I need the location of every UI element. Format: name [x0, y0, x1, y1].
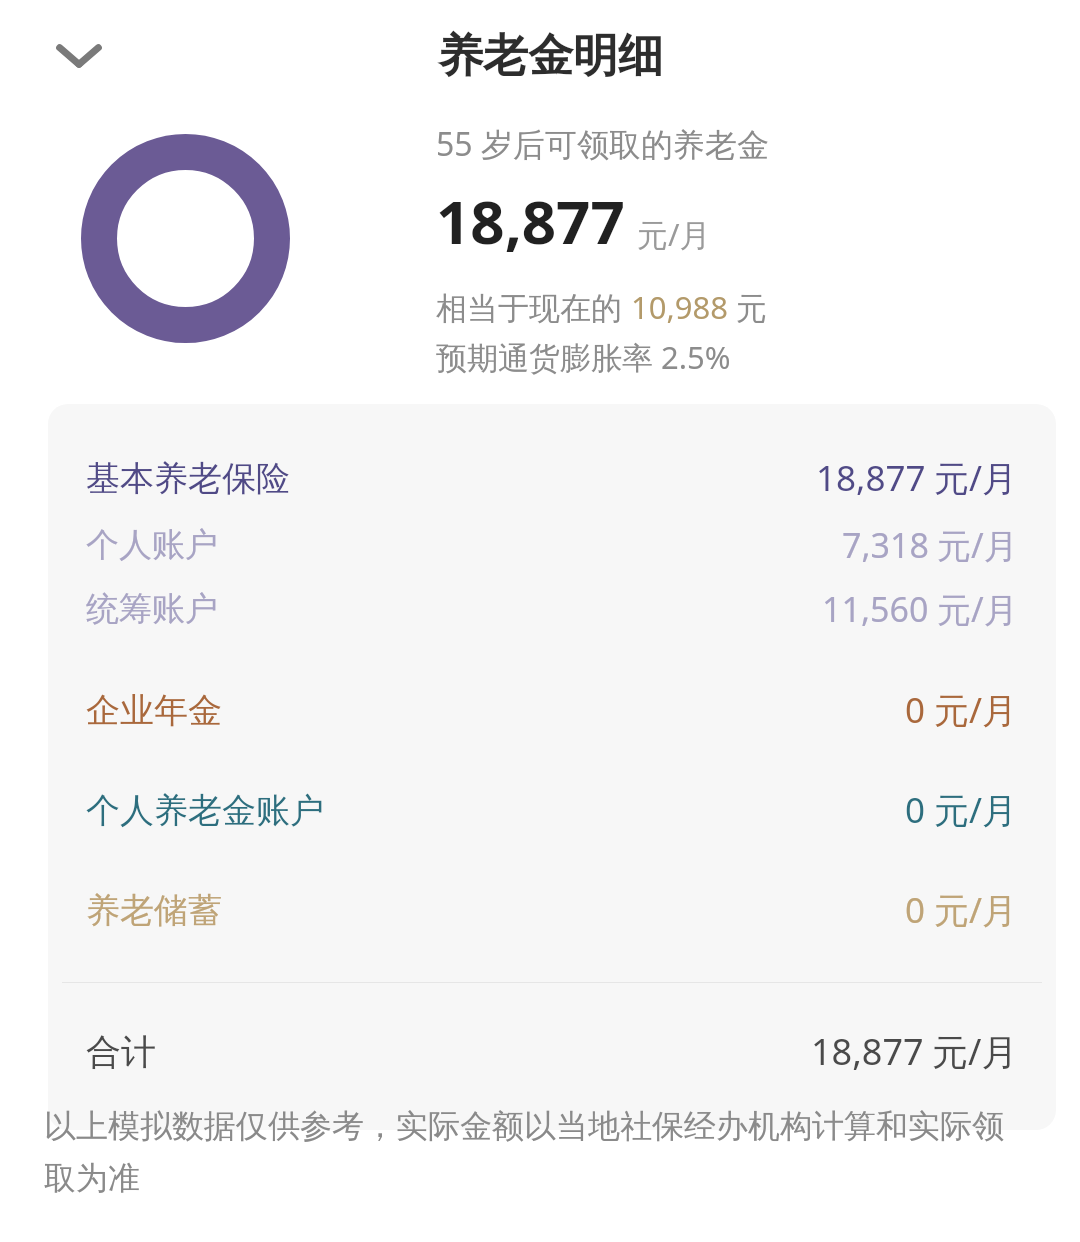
button[interactable]: 基本养老保险	[48, 450, 1056, 506]
staticText: 企业年金	[86, 689, 222, 732]
button[interactable]: 个人账户	[48, 518, 1056, 572]
staticText: 合计	[86, 1030, 156, 1074]
staticText: 元	[728, 286, 768, 328]
staticText: 11,560	[822, 586, 929, 632]
staticText: 元/月	[637, 213, 711, 255]
staticText: 0	[905, 786, 926, 834]
staticText: 元/月	[934, 786, 1018, 834]
staticText: 元/月	[934, 454, 1018, 502]
staticText: 0	[905, 886, 926, 934]
staticText: 个人账户	[86, 524, 218, 566]
staticText: 元/月	[937, 586, 1018, 632]
staticText: 0	[905, 686, 926, 734]
staticText: 相当于现在的	[436, 286, 631, 328]
button[interactable]: 合计	[48, 1023, 1056, 1080]
staticText: 养老储蓄	[86, 889, 222, 932]
staticText: 统筹账户	[86, 588, 218, 630]
staticText: 元/月	[932, 1027, 1018, 1076]
button[interactable]: 统筹账户	[48, 582, 1056, 636]
staticText: 以上模拟数据仅供参考，实际金额以当地社保经办机构计算和实际领取为准	[44, 1106, 1024, 1198]
button[interactable]: 养老储蓄	[48, 882, 1056, 938]
staticText: 基本养老保险	[86, 457, 290, 500]
staticText: 个人养老金账户	[86, 789, 324, 832]
staticText: 预期通货膨胀率 2.5%	[436, 336, 731, 378]
button[interactable]: 个人养老金账户	[48, 782, 1056, 838]
staticText: 元/月	[937, 522, 1018, 568]
staticText: 元/月	[934, 686, 1018, 734]
staticText: 元/月	[934, 886, 1018, 934]
staticText: 养老金明细	[438, 28, 663, 85]
staticText: 55 岁后可领取的养老金	[436, 122, 769, 166]
staticText: 18,877	[436, 180, 625, 262]
button[interactable]: 企业年金	[48, 682, 1056, 738]
button[interactable]: Collapse	[40, 20, 118, 92]
staticText: 18,877	[811, 1027, 924, 1076]
staticText: 18,877	[816, 454, 926, 502]
staticText: 7,318	[842, 522, 929, 568]
staticText: 10,988	[631, 286, 728, 328]
